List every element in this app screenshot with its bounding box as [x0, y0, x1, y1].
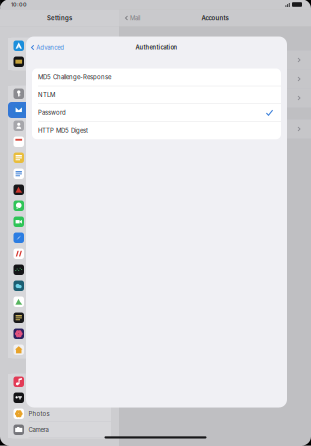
button[interactable]: Messages: [8, 198, 111, 214]
staticText: Camera: [28, 426, 48, 433]
button[interactable]: Account: [119, 119, 311, 138]
button[interactable]: Camera: [8, 422, 111, 438]
staticText: 10:00: [11, 1, 27, 8]
staticText: Photos: [28, 410, 49, 417]
button[interactable]: Advanced: [26, 36, 68, 58]
button[interactable]: MD5 Challenge-Response: [32, 68, 281, 86]
button[interactable]: Calendar: [8, 134, 111, 150]
staticText: Mail: [28, 106, 38, 113]
button[interactable]: Account: [119, 88, 311, 107]
button[interactable]: HTTP MD5 Digest: [32, 122, 281, 139]
staticText: HTTP MD5 Digest: [38, 127, 88, 134]
button[interactable]: Maps: [8, 294, 111, 310]
button[interactable]: Photos: [8, 406, 111, 422]
button[interactable]: Freeform: [8, 182, 111, 198]
button[interactable]: Shortcuts: [8, 326, 111, 342]
button[interactable]: Mail: [119, 9, 144, 26]
button[interactable]: TV: [8, 390, 111, 406]
button[interactable]: NTLM: [32, 86, 281, 104]
staticText: Authentication: [135, 44, 177, 51]
button[interactable]: FaceTime: [8, 214, 111, 230]
button[interactable]: Mail: [8, 102, 111, 118]
staticText: App Store: [28, 42, 57, 49]
button[interactable]: Translate: [8, 310, 111, 326]
button[interactable]: Wallet: [8, 54, 111, 70]
button[interactable]: Passwords: [8, 86, 111, 102]
button[interactable]: Weather: [8, 278, 111, 294]
button[interactable]: Account: [119, 69, 311, 88]
button[interactable]: Reminders: [8, 166, 111, 182]
staticText: MD5 Challenge-Response: [38, 73, 111, 81]
button[interactable]: Safari: [8, 230, 111, 246]
button[interactable]: Home: [8, 342, 111, 358]
staticText: NTLM: [38, 91, 55, 99]
staticText: Accounts: [201, 14, 228, 22]
button[interactable]: Stocks: [8, 262, 111, 278]
staticText: Password: [38, 109, 66, 116]
staticText: Advanced: [36, 44, 64, 51]
staticText: Contacts: [28, 122, 53, 129]
button[interactable]: Contacts: [8, 118, 111, 134]
button[interactable]: Music: [8, 374, 111, 390]
button[interactable]: Notes: [8, 150, 111, 166]
staticText: Mail: [130, 14, 140, 22]
staticText: Passwords: [28, 90, 59, 97]
staticText: Calendar: [28, 138, 52, 145]
button[interactable]: News: [8, 246, 111, 262]
button[interactable]: Account: [119, 50, 311, 69]
staticText: Settings: [47, 14, 72, 22]
button[interactable]: App Store: [8, 38, 111, 54]
button[interactable]: Password: [32, 104, 281, 122]
